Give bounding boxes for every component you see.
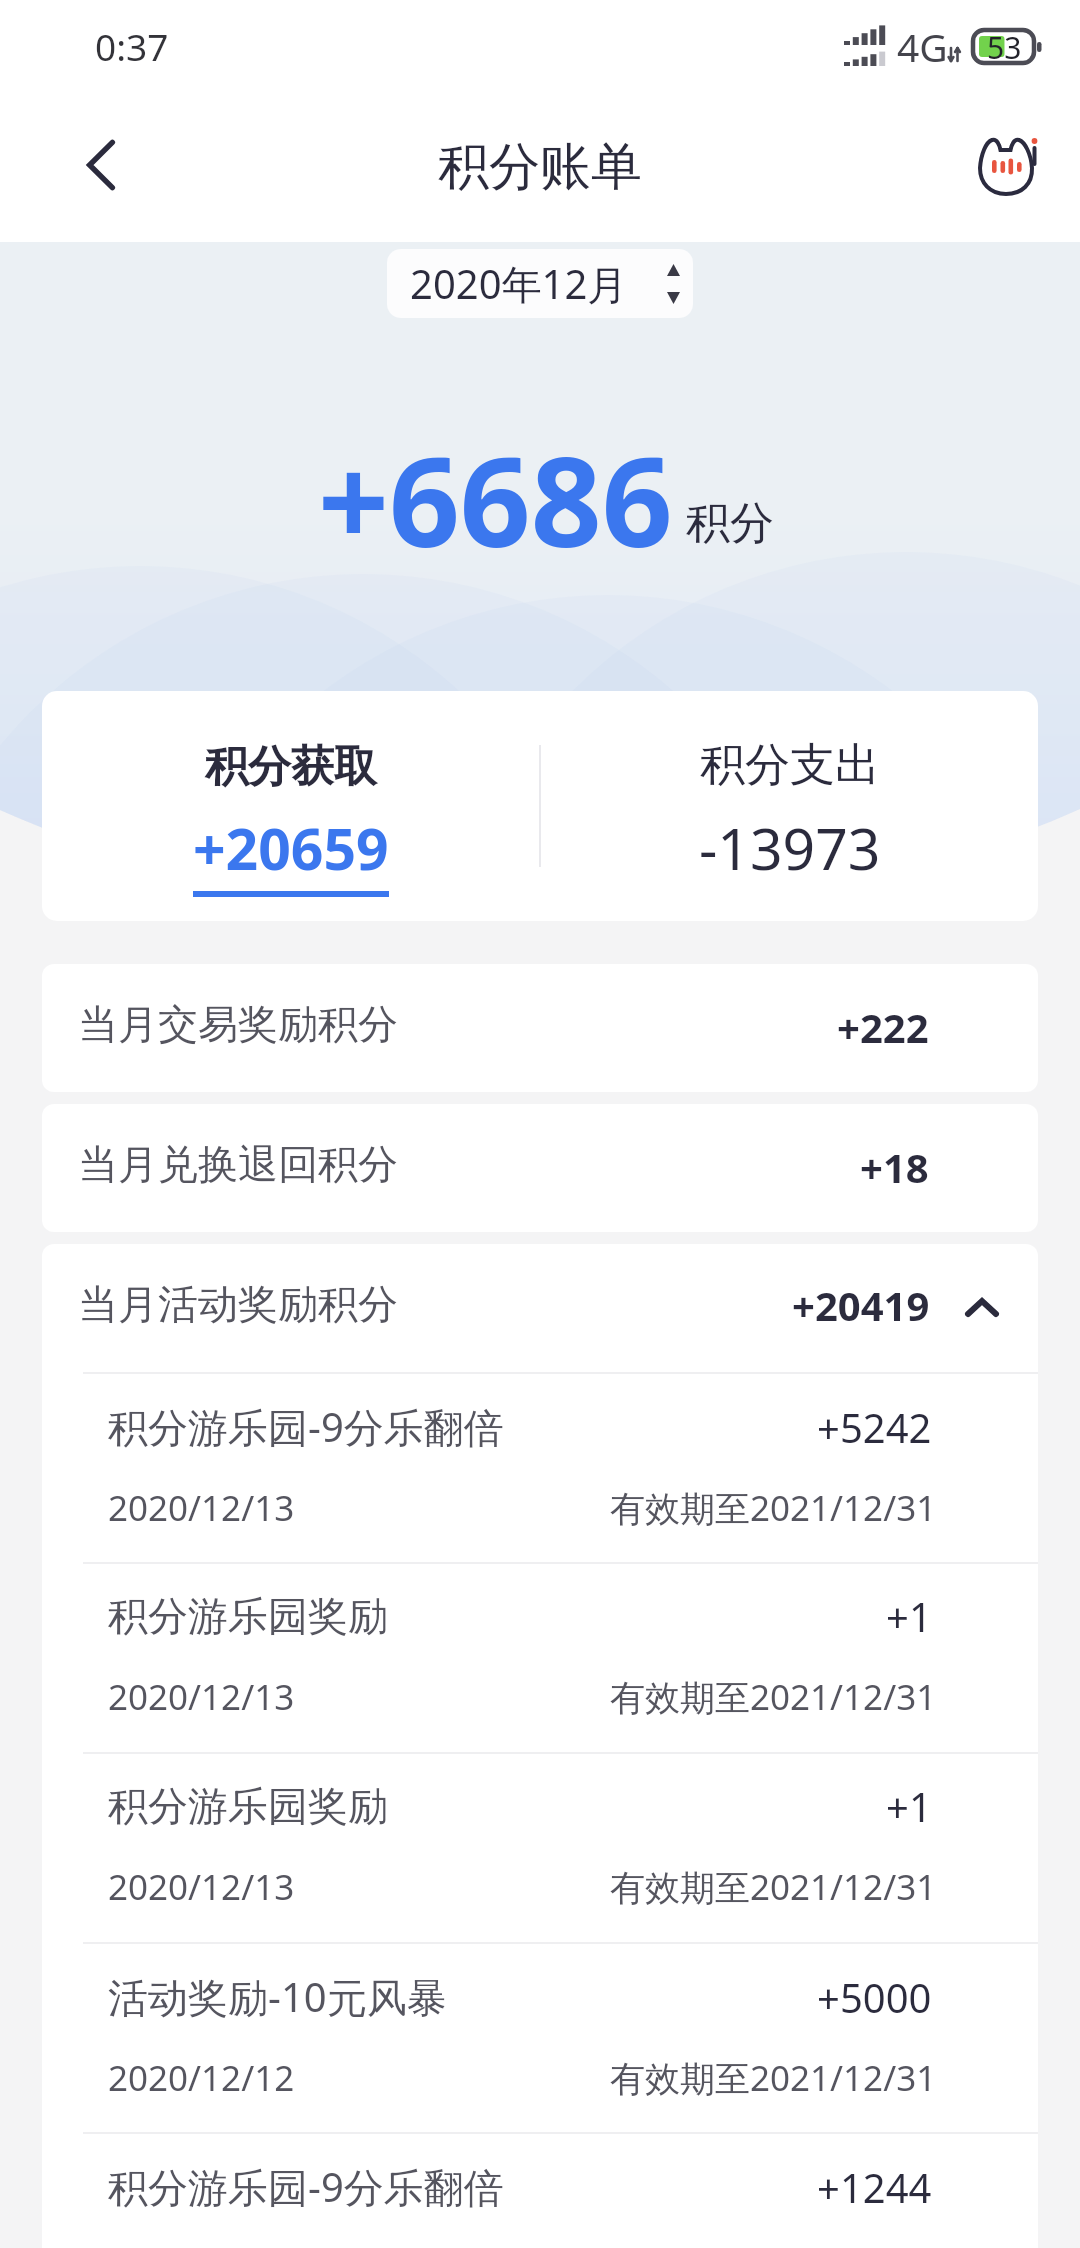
staticText: +20419 xyxy=(792,1278,930,1332)
staticText: +18 xyxy=(860,1140,929,1194)
staticText: 有效期至2021/12/31 xyxy=(610,1863,937,1911)
staticText: 当月活动奖励积分 xyxy=(78,1279,398,1329)
staticText: +20659 xyxy=(193,809,389,887)
staticText: 积分游乐园-9分乐翻倍 xyxy=(108,1399,504,1454)
staticText: 积分游乐园奖励 xyxy=(108,1781,388,1831)
staticText: +1 xyxy=(886,1589,932,1643)
staticText: 当月交易奖励积分 xyxy=(78,999,398,1049)
staticText: +222 xyxy=(837,1000,929,1054)
staticText: 积分 xyxy=(686,496,774,551)
button[interactable]: 客服 xyxy=(940,92,1080,242)
button[interactable]: 2020年12月 xyxy=(387,249,693,318)
button[interactable]: 活动奖励-10元风暴 xyxy=(42,1944,1038,2132)
button[interactable]: 积分游乐园-9分乐翻倍 xyxy=(42,1374,1038,1562)
staticText: 活动奖励-10元风暴 xyxy=(108,1969,447,2024)
staticText: 2020/12/12 xyxy=(108,2054,295,2102)
staticText: 2020/12/13 xyxy=(108,1673,295,1721)
staticText: 2020/12/13 xyxy=(108,1863,295,1911)
staticText: 积分支出 xyxy=(700,737,880,794)
staticText: 53 xyxy=(987,27,1022,67)
staticText: 积分游乐园-9分乐翻倍 xyxy=(108,2159,504,2214)
staticText: 2020年12月 xyxy=(410,256,628,311)
staticText: 有效期至2021/12/31 xyxy=(610,1673,937,1721)
button[interactable]: 积分游乐园奖励 xyxy=(42,1754,1038,1942)
staticText: +6686 xyxy=(318,414,673,583)
staticText: 有效期至2021/12/31 xyxy=(610,1484,937,1532)
button[interactable]: 当月兑换退回积分 xyxy=(42,1104,1038,1232)
button[interactable]: 积分支出 xyxy=(541,691,1038,921)
staticText: 有效期至2021/12/31 xyxy=(610,2054,937,2102)
button[interactable]: 返回 xyxy=(0,92,202,242)
button[interactable]: 积分获取 xyxy=(42,691,539,921)
staticText: 2020/12/13 xyxy=(108,1484,295,1532)
button[interactable]: 当月活动奖励积分 xyxy=(42,1244,1038,1372)
staticText: +5242 xyxy=(817,1400,932,1454)
staticText: 积分游乐园奖励 xyxy=(108,1591,388,1641)
staticText: 4G xyxy=(897,20,948,73)
staticText: 0:37 xyxy=(95,21,169,71)
button[interactable]: 积分游乐园-9分乐翻倍 xyxy=(42,2134,1038,2248)
staticText: 积分账单 xyxy=(438,135,642,199)
staticText: 当月兑换退回积分 xyxy=(78,1139,398,1189)
staticText: 积分获取 xyxy=(205,740,377,794)
button[interactable]: 当月交易奖励积分 xyxy=(42,964,1038,1092)
staticText: -13973 xyxy=(699,809,881,887)
staticText: +5000 xyxy=(817,1970,932,2024)
staticText: +1 xyxy=(886,1779,932,1833)
button[interactable]: 积分游乐园奖励 xyxy=(42,1564,1038,1752)
staticText: +1244 xyxy=(817,2160,932,2214)
